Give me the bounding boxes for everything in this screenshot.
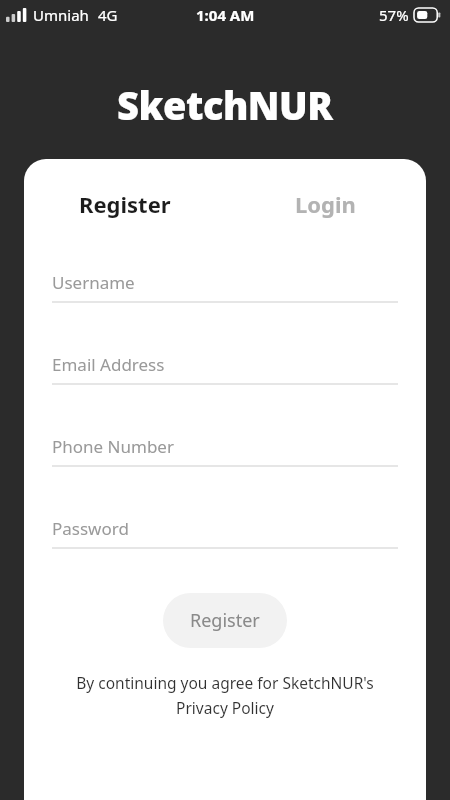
staticText: SketchNUR xyxy=(117,79,333,131)
staticText: Email Address xyxy=(52,353,165,376)
button[interactable]: Email Address xyxy=(52,353,398,385)
staticText: Username xyxy=(52,271,135,294)
staticText: Umniah xyxy=(33,5,89,25)
staticText: Login xyxy=(295,189,356,219)
button[interactable]: Password xyxy=(52,517,398,549)
staticText: 57% xyxy=(379,5,409,25)
other: Battery 57 percent xyxy=(414,8,441,22)
button[interactable]: By continuing you agree for SketchNUR's … xyxy=(48,672,402,719)
staticText: By continuing you agree for SketchNUR's … xyxy=(76,672,374,719)
staticText: Password xyxy=(52,517,129,540)
button[interactable]: Register xyxy=(163,593,287,648)
staticText: 4G xyxy=(98,5,118,25)
staticText: Phone Number xyxy=(52,435,174,458)
staticText: Register xyxy=(190,608,260,633)
other: Signal strength xyxy=(6,8,28,22)
staticText: 1:04 AM xyxy=(196,5,255,25)
button[interactable]: Phone Number xyxy=(52,435,398,467)
button[interactable]: Login xyxy=(225,181,426,227)
button[interactable]: Register xyxy=(24,181,225,227)
staticText: Register xyxy=(79,189,171,219)
button[interactable]: Username xyxy=(52,271,398,303)
